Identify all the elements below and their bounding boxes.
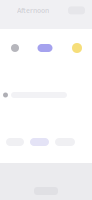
button[interactable]: Third — [71, 43, 83, 53]
button[interactable]: Option three — [55, 138, 75, 146]
button[interactable]: Second — [37, 44, 52, 52]
button[interactable]: Option one — [6, 138, 24, 146]
button[interactable]: Option two — [30, 138, 49, 146]
button[interactable]: First — [11, 43, 19, 52]
staticText: Afternoon — [17, 6, 49, 15]
